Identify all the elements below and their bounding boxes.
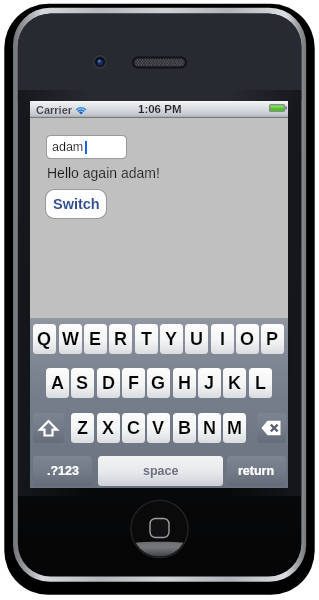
button[interactable]: K [223,368,246,398]
staticText: S [76,373,89,393]
staticText: E [89,329,102,349]
staticText: T [141,329,152,349]
button[interactable]: R [109,324,132,354]
staticText: Hello again adam! [47,165,160,181]
staticText: Q [37,329,52,349]
button[interactable]: return [227,456,286,486]
button[interactable]: D [97,368,120,398]
staticText: return [238,464,275,478]
button[interactable]: J [198,368,221,398]
staticText: .?123 [47,464,79,478]
staticText: W [62,329,79,349]
button[interactable]: T [135,324,158,354]
staticText: Z [77,418,88,438]
staticText: K [228,373,241,393]
button[interactable]: V [147,413,170,443]
button[interactable]: C [122,413,145,443]
staticText: F [128,373,139,393]
button[interactable]: M [223,413,246,443]
button[interactable]: U [185,324,208,354]
staticText: N [203,418,216,438]
staticText: U [190,329,203,349]
staticText: A [51,373,64,393]
staticText: O [240,329,255,349]
staticText: I [220,329,226,349]
staticText: Carrier [36,104,73,116]
button[interactable]: N [198,413,221,443]
button[interactable]: E [84,324,107,354]
staticText: C [127,418,140,438]
staticText: G [151,373,166,393]
button[interactable]: S [71,368,94,398]
button[interactable]: Backspace [257,413,286,443]
button[interactable]: I [211,324,234,354]
staticText: P [266,329,279,349]
staticText: H [178,373,191,393]
button[interactable]: F [122,368,145,398]
button[interactable]: L [249,368,272,398]
button[interactable]: O [236,324,259,354]
button[interactable]: B [173,413,196,443]
button[interactable]: Shift [33,413,64,443]
button[interactable]: Z [71,413,94,443]
staticText: Y [165,329,178,349]
button[interactable]: Switch [46,190,106,218]
staticText: R [114,329,127,349]
button[interactable]: H [173,368,196,398]
button[interactable]: A [46,368,69,398]
button[interactable]: X [97,413,120,443]
button[interactable]: P [261,324,284,354]
staticText: L [255,373,266,393]
staticText: B [178,418,191,438]
staticText: D [102,373,115,393]
staticText: X [102,418,115,438]
staticText: space [143,464,179,478]
button[interactable]: Q [33,324,56,354]
staticText: V [152,418,165,438]
staticText: adam [52,140,84,154]
button[interactable]: W [59,324,82,354]
staticText: Switch [53,196,100,212]
staticText: 1:06 PM [138,103,182,116]
button[interactable]: Y [160,324,183,354]
button[interactable]: adam [47,136,126,158]
staticText: J [204,373,215,393]
button[interactable]: .?123 [33,456,92,486]
button[interactable]: G [147,368,170,398]
staticText: M [227,418,242,438]
button[interactable]: space [98,456,223,486]
